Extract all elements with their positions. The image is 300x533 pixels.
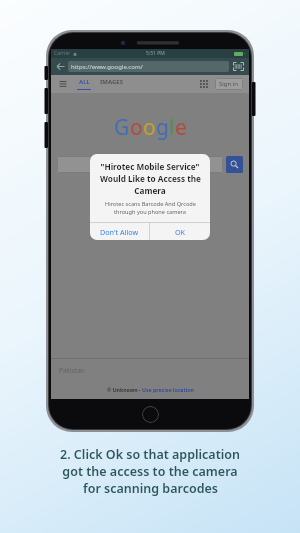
- staticText: Carrier: [54, 50, 71, 57]
- button[interactable]: [57, 156, 223, 173]
- button[interactable]: Don't Allow: [90, 223, 149, 240]
- staticText: Would Like to Access the: [100, 173, 201, 184]
- staticText: Pakistan: [59, 366, 85, 375]
- staticText: Sign in: [219, 80, 239, 88]
- button[interactable]: OK: [150, 223, 210, 240]
- button[interactable]: Search: [226, 156, 243, 173]
- staticText: Don't Allow: [100, 227, 139, 237]
- staticText: o: [130, 113, 143, 142]
- staticText: o: [143, 113, 156, 142]
- staticText: for scanning barcodes: [83, 480, 218, 497]
- button[interactable]: Back: [55, 61, 66, 72]
- button[interactable]: Apps: [198, 78, 210, 90]
- staticText: OK: [175, 227, 186, 237]
- staticText: •: [244, 51, 246, 56]
- staticText: got the access to the camera: [62, 463, 238, 480]
- staticText: l: [169, 113, 175, 142]
- button[interactable]: Sign in: [215, 78, 243, 90]
- staticText: IMAGES: [100, 78, 124, 86]
- button[interactable]: Home: [142, 406, 159, 423]
- staticText: 2. Click Ok so that application: [60, 446, 240, 463]
- staticText: g: [156, 113, 169, 142]
- staticText: e: [175, 113, 187, 142]
- button[interactable]: ALL: [77, 78, 91, 90]
- button[interactable]: Menu: [57, 78, 69, 90]
- button[interactable]: https://www.google.com/: [68, 61, 229, 72]
- staticText: Hirotec scans Barcode And Qrcode: [105, 200, 196, 208]
- staticText: through you phone camera: [114, 208, 186, 216]
- staticText: Use precise location: [142, 386, 194, 393]
- staticText: ALL: [79, 78, 90, 86]
- staticText: ® Unknown -: [107, 386, 142, 393]
- button[interactable]: IMAGES: [100, 78, 124, 86]
- staticText: G: [114, 113, 130, 142]
- staticText: https://www.google.com/: [71, 63, 143, 71]
- staticText: "Hirotec Mobile Service": [100, 161, 200, 172]
- staticText: Camera: [134, 185, 166, 196]
- button[interactable]: Scan barcode: [232, 60, 245, 73]
- staticText: 5:51 PM: [146, 50, 165, 57]
